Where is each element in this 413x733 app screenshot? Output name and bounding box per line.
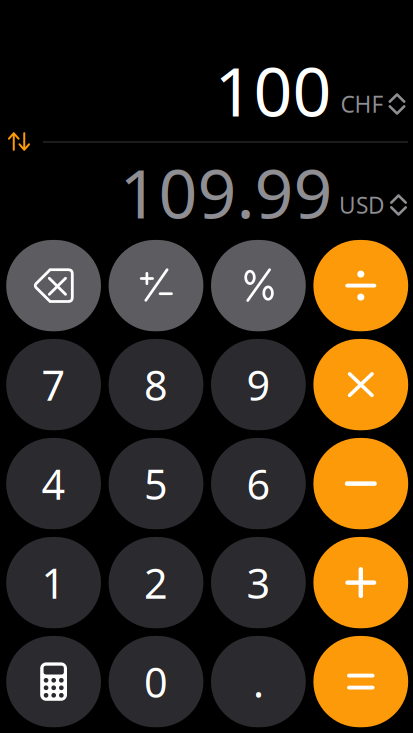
button[interactable]: Calculator [6, 636, 101, 727]
button[interactable]: Divide [313, 240, 408, 331]
button[interactable]: 5 [109, 438, 203, 529]
staticText: USD [339, 190, 385, 220]
staticText: 3 [246, 555, 270, 610]
button[interactable]: 1 [6, 537, 101, 628]
button[interactable]: Swap currencies [8, 132, 30, 151]
button[interactable]: Plus [313, 537, 408, 628]
button[interactable]: 3 [211, 537, 306, 628]
button[interactable]: Delete [6, 240, 101, 331]
staticText: CHF [340, 89, 383, 119]
staticText: 4 [42, 456, 66, 511]
button[interactable]: 9 [211, 339, 306, 430]
staticText: 109.99 [119, 147, 332, 237]
button[interactable]: 7 [6, 339, 101, 430]
button[interactable]: 0 [109, 636, 203, 727]
staticText: 2 [144, 555, 168, 610]
staticText: 9 [246, 357, 270, 412]
staticText: 7 [42, 357, 66, 412]
button[interactable]: Minus [313, 438, 408, 529]
button[interactable]: Multiply [313, 339, 408, 430]
button[interactable]: 4 [6, 438, 101, 529]
button[interactable]: USD [337, 190, 409, 220]
staticText: 5 [144, 456, 168, 511]
staticText: 8 [144, 357, 168, 412]
button[interactable]: 2 [109, 537, 203, 628]
staticText: 100 [214, 45, 331, 135]
button[interactable]: Percent [211, 240, 306, 331]
staticText: 1 [42, 555, 66, 610]
button[interactable]: 8 [109, 339, 203, 430]
button[interactable]: CHF [337, 89, 409, 119]
button[interactable]: Equals [313, 636, 408, 727]
staticText: 0 [144, 654, 168, 709]
button[interactable]: . [211, 636, 306, 727]
button[interactable]: Toggle sign [109, 240, 203, 331]
button[interactable]: 6 [211, 438, 306, 529]
staticText: . [253, 654, 264, 709]
staticText: 6 [246, 456, 270, 511]
